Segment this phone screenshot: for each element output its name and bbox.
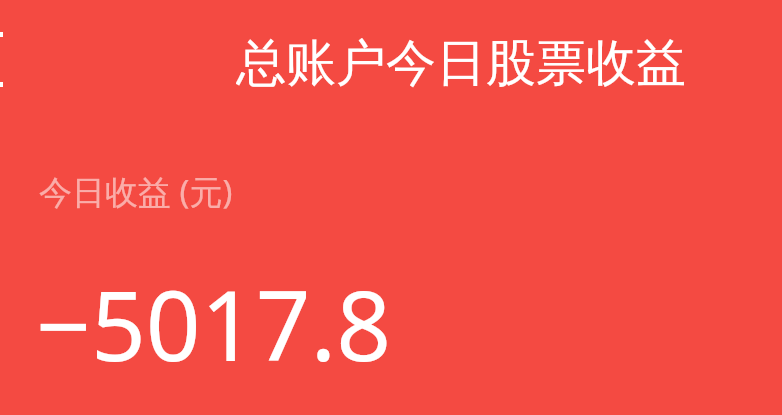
staticText: −5017.85: [36, 258, 436, 368]
button[interactable]: −5017.85: [36, 258, 436, 368]
button[interactable]: 总账户今日股票收益: [236, 32, 696, 92]
staticText: 今日收益 (元): [39, 169, 233, 214]
staticText: 总账户今日股票收益: [236, 32, 686, 92]
